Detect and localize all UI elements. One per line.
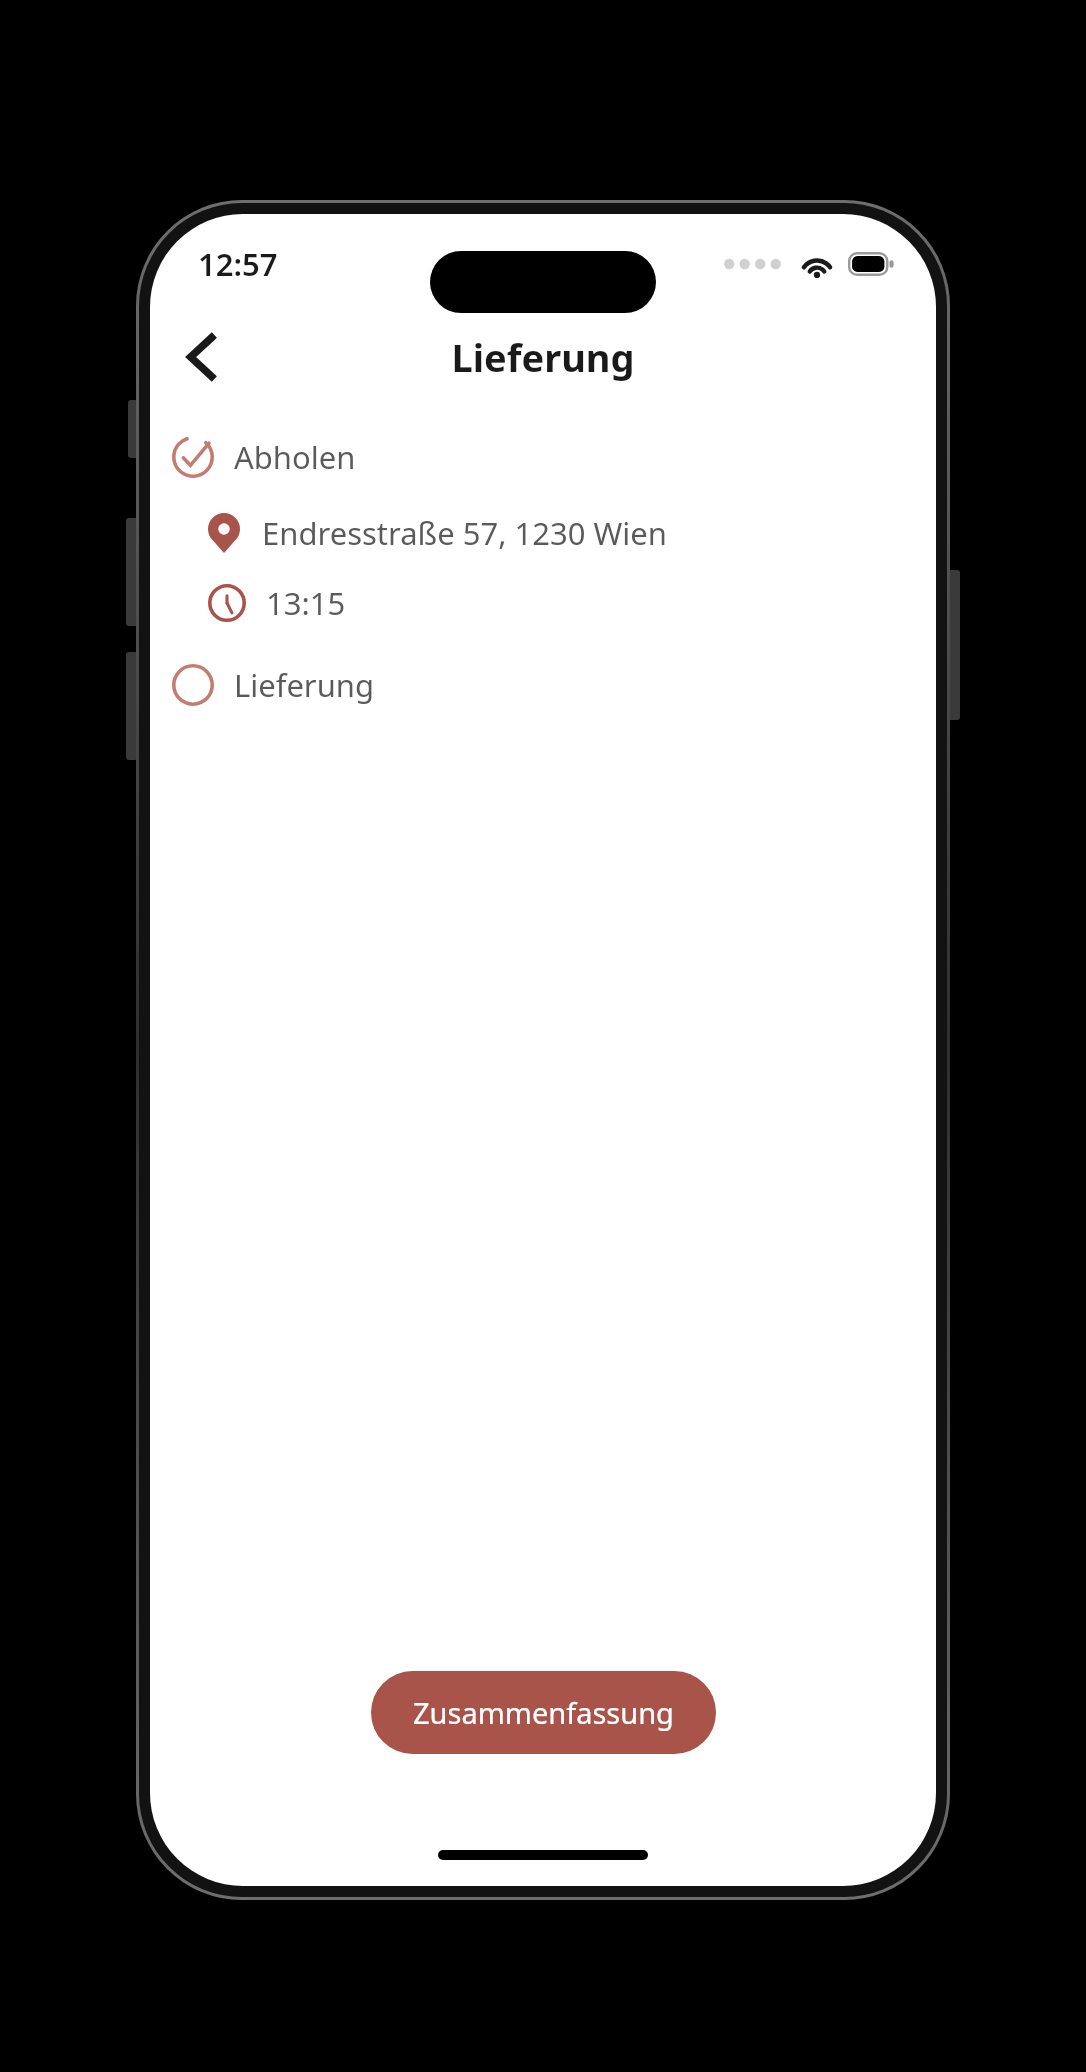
button[interactable]: Endresstraße 57, 1230 Wien (150, 504, 936, 562)
staticText: Zusammenfassung (413, 1693, 674, 1732)
staticText: Lieferung (234, 664, 375, 706)
staticText: Endresstraße 57, 1230 Wien (262, 512, 667, 554)
button[interactable]: Abholen (150, 426, 936, 488)
staticText: Abholen (234, 436, 356, 478)
staticText: 13:15 (266, 582, 346, 624)
staticText: Lieferung (451, 331, 635, 383)
button[interactable]: Zusammenfassung (371, 1671, 716, 1754)
staticText: 12:57 (198, 243, 278, 285)
button[interactable]: Lieferung (150, 654, 936, 716)
button[interactable]: Back (164, 319, 240, 395)
button[interactable]: 13:15 (150, 574, 936, 632)
